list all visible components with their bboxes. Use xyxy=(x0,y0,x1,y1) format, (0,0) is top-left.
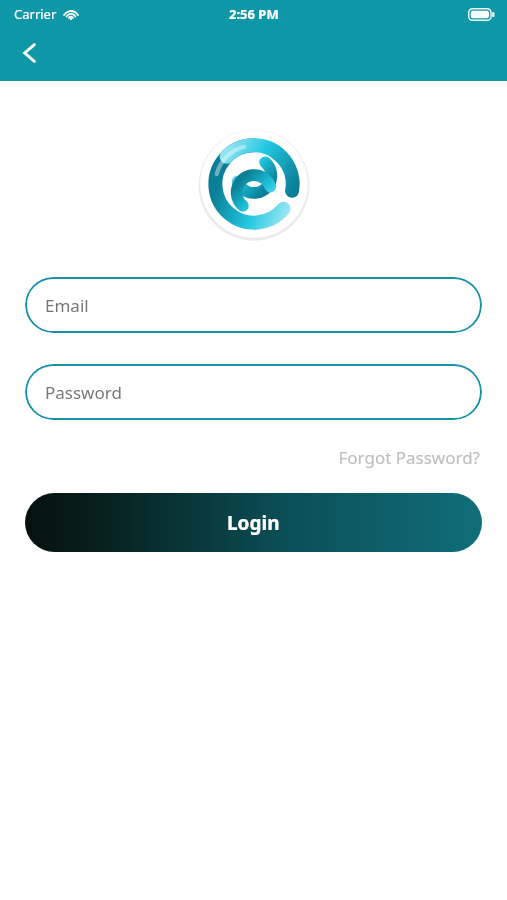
staticText: Carrier xyxy=(14,5,57,23)
staticText: Forgot Password? xyxy=(338,446,480,469)
button[interactable]: Password xyxy=(25,364,482,420)
staticText: Email xyxy=(45,294,89,317)
staticText: 2:56 PM xyxy=(229,5,279,23)
button[interactable]: Forgot Password? xyxy=(336,444,482,471)
button[interactable]: Back xyxy=(8,31,52,75)
button[interactable]: Email xyxy=(25,277,482,333)
staticText: Password xyxy=(45,381,122,404)
button[interactable]: Login xyxy=(25,493,482,552)
staticText: Login xyxy=(227,510,280,536)
